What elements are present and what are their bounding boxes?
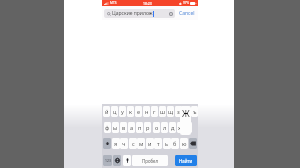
staticText: м <box>139 140 144 148</box>
button[interactable]: э <box>185 122 192 133</box>
staticText: 18:23 <box>143 1 152 6</box>
button[interactable]: х <box>183 106 190 117</box>
button[interactable]: к <box>127 106 134 117</box>
staticText: 123 <box>105 158 111 163</box>
button[interactable]: у <box>119 106 126 117</box>
button[interactable]: ъ <box>191 106 198 117</box>
staticText: е <box>137 108 141 116</box>
staticText: я <box>114 140 118 148</box>
staticText: ф <box>105 124 110 132</box>
staticText: ю <box>182 140 187 148</box>
button[interactable]: б <box>171 138 179 149</box>
button[interactable]: 123 <box>103 155 112 166</box>
button[interactable]: д <box>169 122 176 133</box>
button[interactable]: п <box>136 122 143 133</box>
staticText: Ж <box>182 108 190 120</box>
button[interactable]: Backspace <box>189 138 197 149</box>
button[interactable]: Найти <box>175 155 197 166</box>
staticText: ь <box>165 140 169 148</box>
staticText: б <box>173 140 177 148</box>
staticText: п <box>138 124 142 132</box>
button[interactable]: я <box>112 138 120 149</box>
button[interactable]: ш <box>159 106 166 117</box>
button[interactable]: й <box>103 106 110 117</box>
staticText: т <box>157 140 160 148</box>
staticText: Cancel <box>179 10 195 17</box>
button[interactable]: Clear <box>168 11 174 17</box>
button[interactable]: о <box>153 122 160 133</box>
button[interactable]: Dictate <box>123 155 131 166</box>
button[interactable]: н <box>143 106 150 117</box>
button[interactable]: щ <box>167 106 174 117</box>
button[interactable]: в <box>120 122 127 133</box>
button[interactable]: ь <box>163 138 171 149</box>
staticText: ш <box>160 108 166 116</box>
button[interactable]: Change keyboard <box>113 155 121 166</box>
button[interactable]: л <box>161 122 168 133</box>
staticText: х <box>185 108 188 116</box>
staticText: ц <box>113 108 117 116</box>
staticText: Пробел <box>142 158 159 164</box>
button[interactable]: а <box>128 122 135 133</box>
button[interactable]: з <box>175 106 182 117</box>
staticText: ч <box>122 140 126 148</box>
button[interactable]: Царские прилож <box>104 9 175 18</box>
staticText: ж <box>178 124 183 132</box>
button[interactable]: с <box>129 138 137 149</box>
staticText: Найти <box>179 158 193 164</box>
staticText: ✱ <box>179 2 182 5</box>
button[interactable]: м <box>137 138 145 149</box>
button[interactable]: ы <box>112 122 119 133</box>
staticText: у <box>121 108 124 116</box>
button[interactable]: ч <box>120 138 128 149</box>
staticText: д <box>171 124 175 132</box>
staticText: ы <box>113 124 118 132</box>
staticText: 97% <box>183 1 189 5</box>
staticText: ъ <box>193 108 197 116</box>
staticText: н <box>145 108 149 116</box>
staticText: р <box>146 124 150 132</box>
button[interactable]: т <box>154 138 162 149</box>
button[interactable]: р <box>144 122 151 133</box>
button[interactable]: е <box>135 106 142 117</box>
staticText: Царские прилож <box>112 10 153 17</box>
staticText: и <box>148 140 152 148</box>
staticText: в <box>122 124 126 132</box>
button[interactable]: и <box>146 138 154 149</box>
button[interactable]: ж <box>177 122 184 133</box>
staticText: г <box>153 108 156 116</box>
button[interactable]: ф <box>104 122 111 133</box>
button[interactable]: г <box>151 106 158 117</box>
button[interactable]: ю <box>180 138 188 149</box>
button[interactable]: Cancel <box>178 10 196 17</box>
staticText: MTS <box>110 1 117 5</box>
staticText: с <box>132 140 135 148</box>
staticText: й <box>105 108 109 116</box>
staticText: л <box>163 124 167 132</box>
staticText: з <box>177 108 180 116</box>
button[interactable]: Shift <box>103 138 111 149</box>
staticText: щ <box>168 108 174 116</box>
staticText: о <box>155 124 159 132</box>
staticText: к <box>129 108 132 116</box>
button[interactable]: ц <box>111 106 118 117</box>
button[interactable]: Пробел <box>132 155 168 166</box>
staticText: а <box>130 124 134 132</box>
